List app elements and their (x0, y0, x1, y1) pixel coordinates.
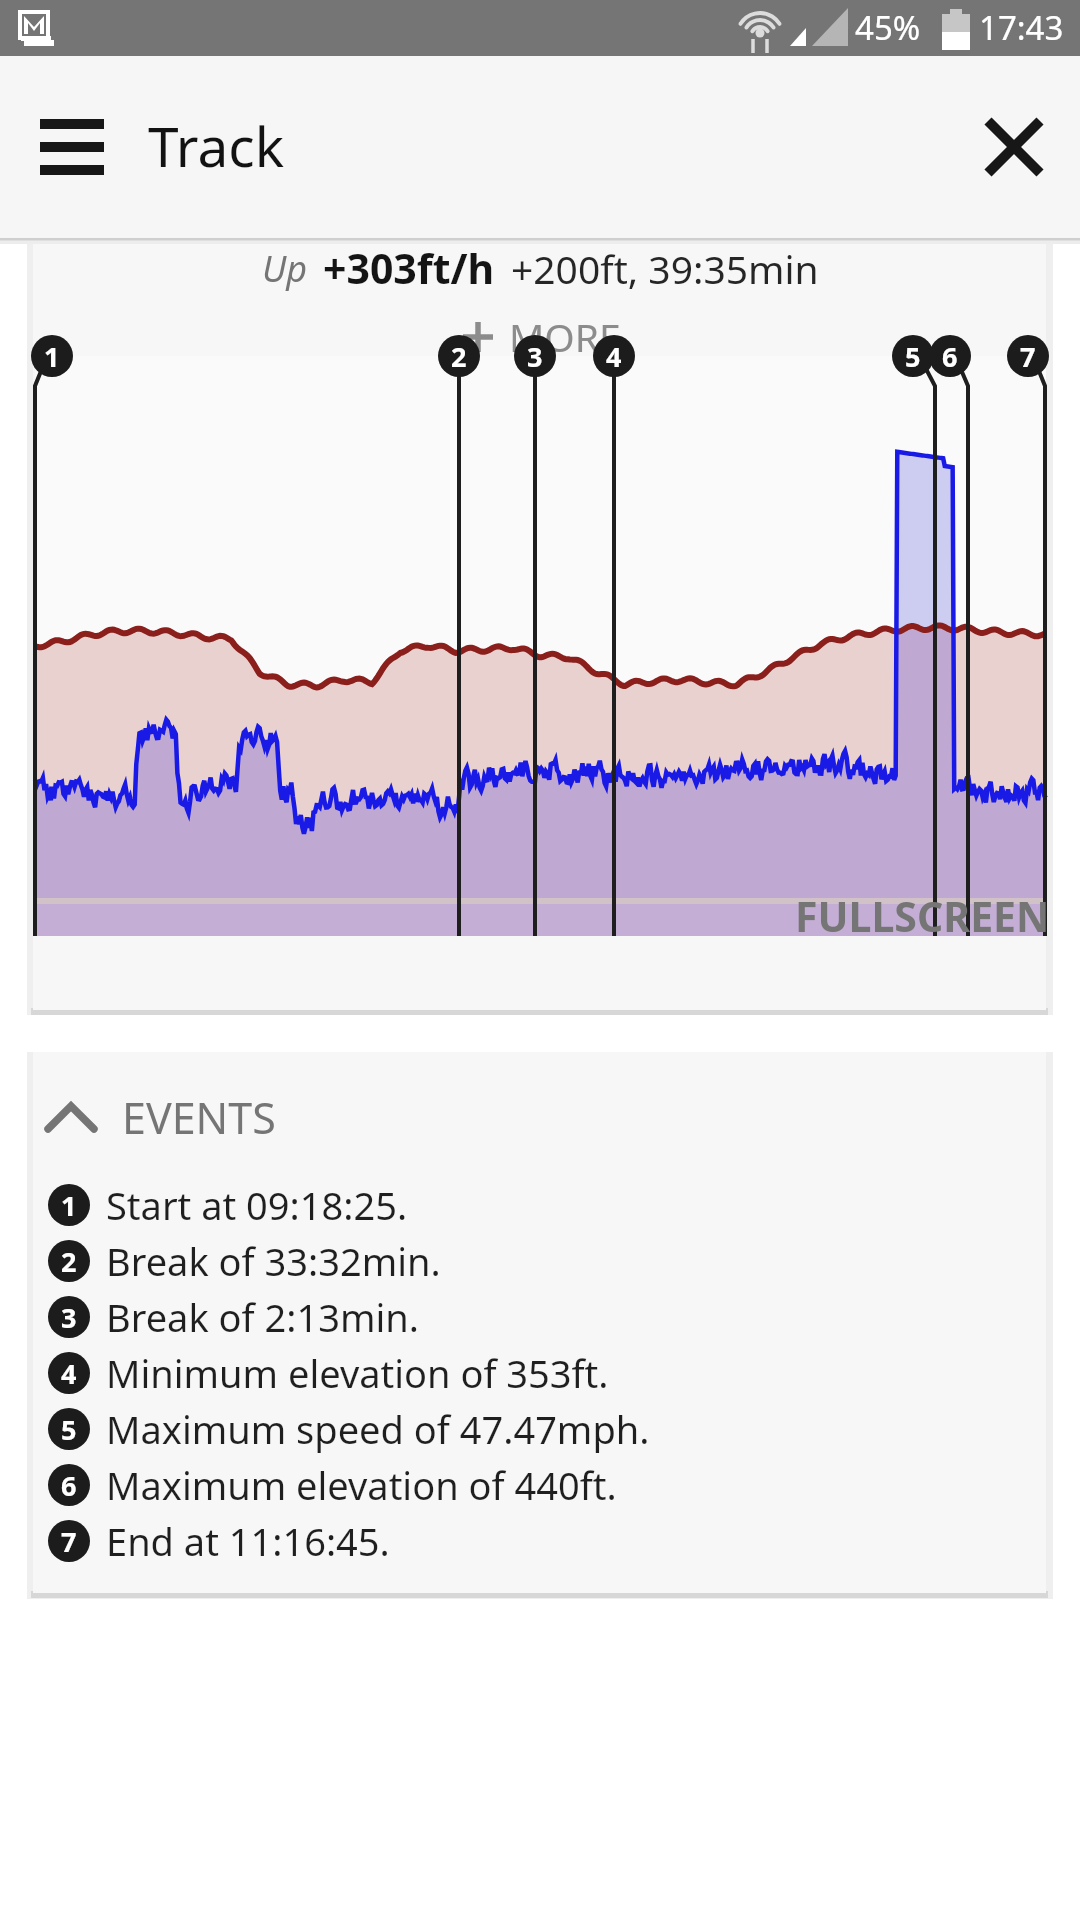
button[interactable]: 2 (0, 1233, 1080, 1289)
staticText: +200ft, 39:35min (511, 242, 819, 295)
staticText: 7 (1020, 338, 1036, 375)
staticText: 3 (527, 338, 543, 375)
staticText: End at 11:16:45. (106, 1515, 390, 1567)
button[interactable]: 5 (892, 335, 934, 377)
staticText: 1 (61, 1187, 77, 1224)
staticText: 6 (61, 1467, 77, 1504)
staticText: Minimum elevation of 353ft. (106, 1347, 609, 1399)
staticText: 2 (61, 1243, 77, 1280)
button[interactable]: Close (964, 97, 1064, 197)
staticText: 2 (451, 338, 467, 375)
staticText: 6 (942, 338, 958, 375)
button[interactable]: 6 (929, 335, 971, 377)
staticText: 4 (606, 338, 622, 375)
button[interactable]: 4 (0, 1345, 1080, 1401)
staticText: 5 (905, 338, 921, 375)
staticText: EVENTS (122, 1088, 276, 1147)
button[interactable]: 7 (1007, 335, 1049, 377)
staticText: Maximum elevation of 440ft. (106, 1459, 617, 1511)
button[interactable]: 7 (0, 1513, 1080, 1569)
staticText: 4 (61, 1355, 77, 1392)
staticText: Maximum speed of 47.47mph. (106, 1403, 650, 1455)
button[interactable]: 3 (514, 335, 556, 377)
button[interactable]: 1 (31, 335, 73, 377)
staticText: Track (148, 108, 285, 183)
button[interactable]: Open navigation menu (22, 97, 122, 197)
button[interactable]: 5 (0, 1401, 1080, 1457)
staticText: MORE (509, 310, 621, 363)
button[interactable]: FULLSCREEN (785, 878, 1060, 954)
staticText: 17:43 (979, 5, 1064, 50)
staticText: 7 (61, 1523, 77, 1560)
button[interactable]: 3 (0, 1289, 1080, 1345)
staticText: 5 (61, 1411, 77, 1448)
staticText: +303ft/h (323, 240, 495, 296)
staticText: Break of 2:13min. (106, 1291, 419, 1343)
button[interactable]: 4 (593, 335, 635, 377)
staticText: 1 (44, 338, 60, 375)
button[interactable]: EVENTS (0, 1080, 1080, 1155)
staticText: FULLSCREEN (795, 888, 1050, 944)
button[interactable]: 6 (0, 1457, 1080, 1513)
button[interactable]: 1 (0, 1177, 1080, 1233)
staticText: 3 (61, 1299, 77, 1336)
staticText: Start at 09:18:25. (106, 1179, 408, 1231)
button[interactable]: MORE (440, 300, 641, 373)
staticText: Up (262, 244, 308, 293)
staticText: Break of 33:32min. (106, 1235, 441, 1287)
button[interactable]: 2 (438, 335, 480, 377)
staticText: 45% (855, 5, 921, 50)
